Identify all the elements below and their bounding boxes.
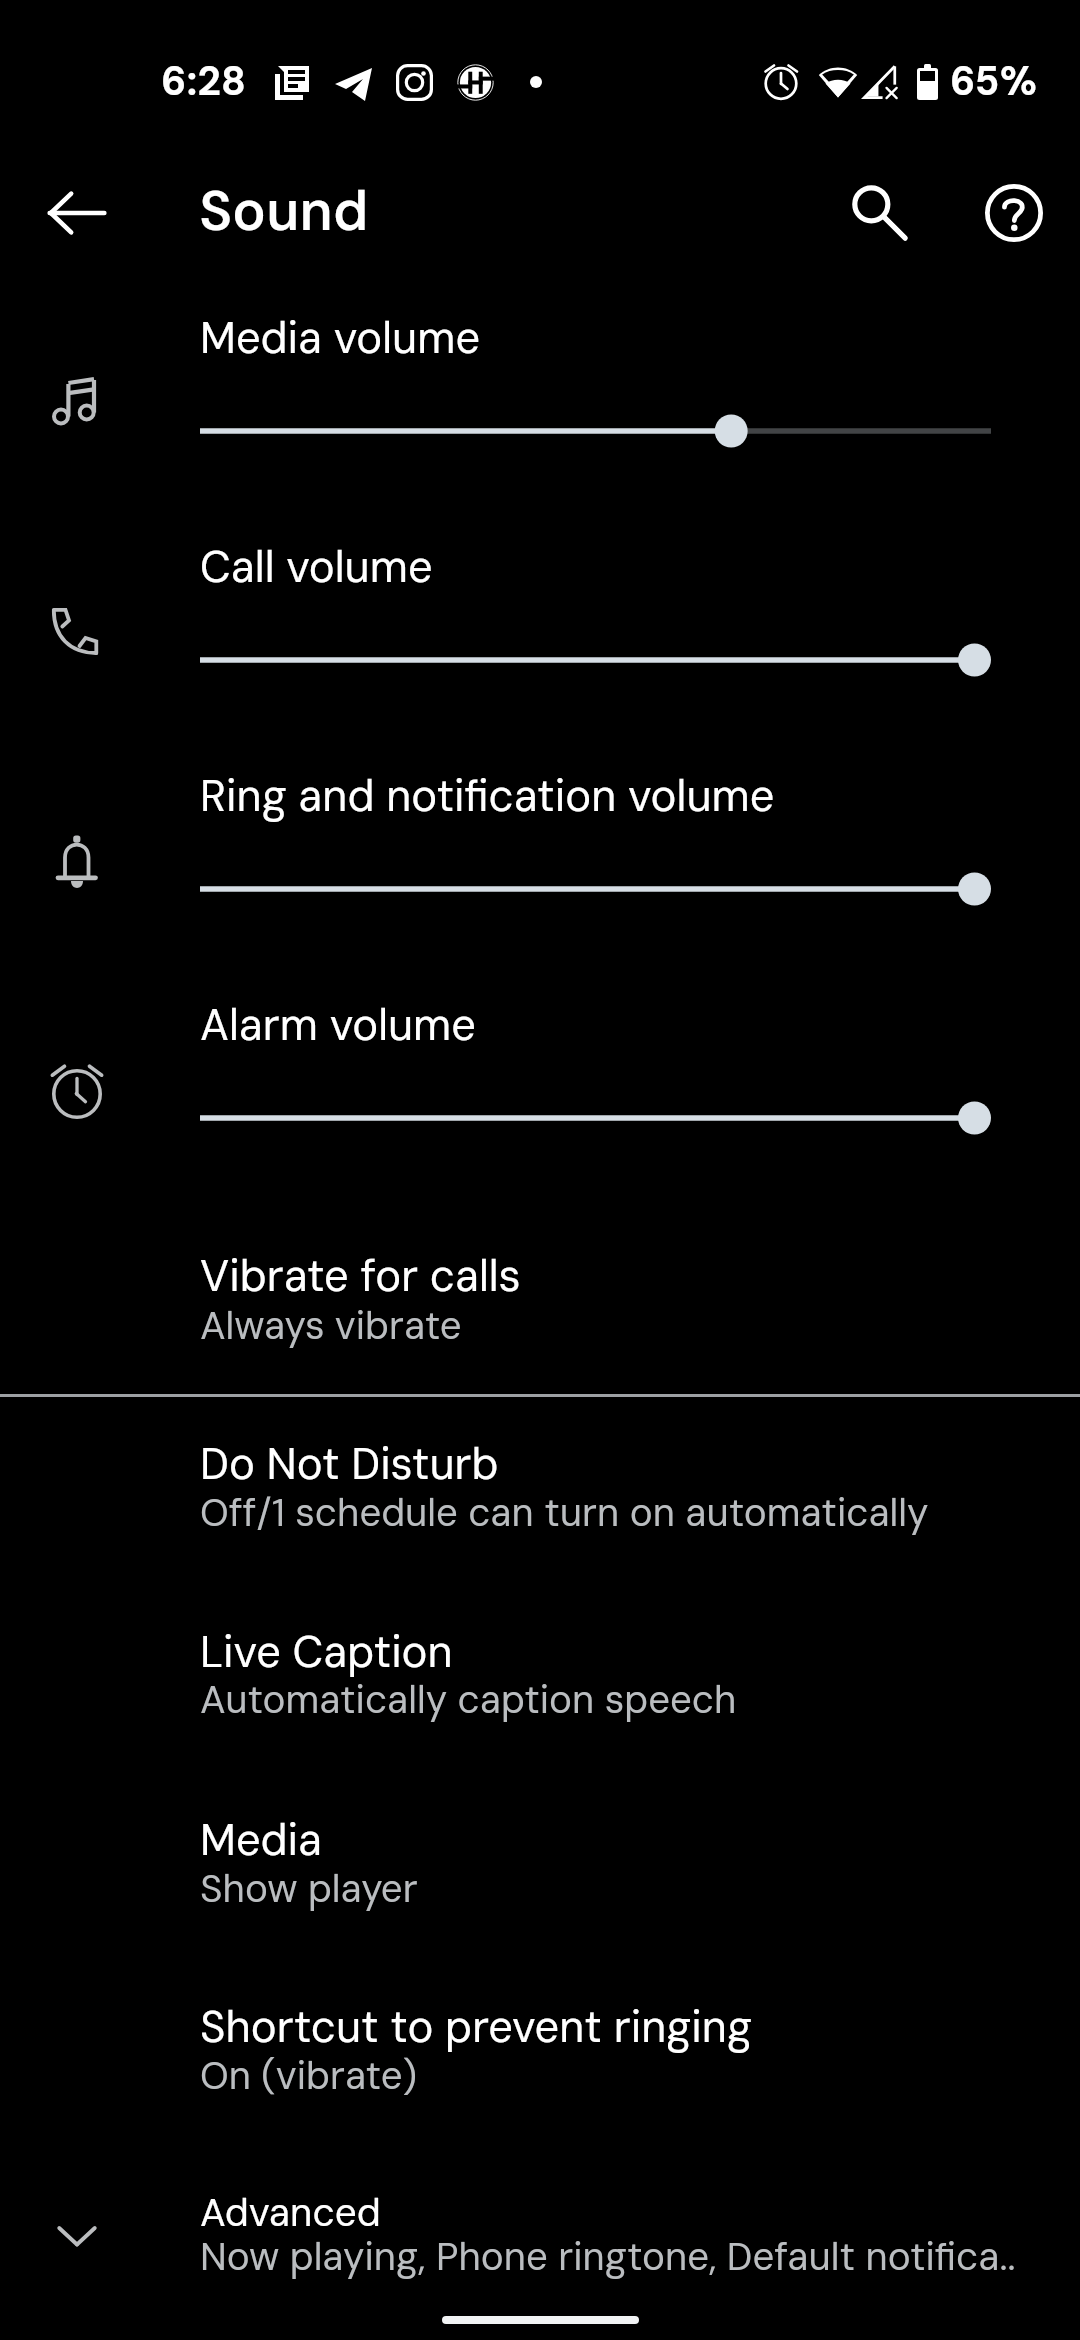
staticText: Media volume xyxy=(200,310,481,367)
staticText: Vibrate for calls xyxy=(200,1248,521,1305)
button[interactable] xyxy=(0,285,1080,465)
staticText: On (vibrate) xyxy=(200,2051,417,2101)
button[interactable] xyxy=(0,972,1080,1152)
button[interactable]: Help xyxy=(958,157,1070,269)
staticText: Do Not Disturb xyxy=(200,1436,499,1493)
staticText: 6:28 xyxy=(161,55,247,107)
button[interactable] xyxy=(0,1607,1080,1732)
staticText: Always vibrate xyxy=(200,1301,462,1351)
button[interactable] xyxy=(0,743,1080,923)
button[interactable] xyxy=(0,1795,1080,1920)
staticText: Advanced xyxy=(200,2188,381,2238)
staticText: Show player xyxy=(200,1864,418,1914)
button[interactable]: Back xyxy=(21,157,133,269)
staticText: Ring and notification volume xyxy=(200,768,775,825)
staticText: Now playing, Phone ringtone, Default not… xyxy=(200,2232,1016,2282)
button[interactable] xyxy=(0,1231,1080,1356)
staticText: Shortcut to prevent ringing xyxy=(200,1999,752,2056)
staticText: Media xyxy=(200,1812,322,1869)
staticText: 65% xyxy=(950,55,1038,107)
staticText: Automatically caption speech xyxy=(200,1675,737,1725)
button[interactable] xyxy=(0,1419,1080,1544)
button[interactable] xyxy=(0,2166,1080,2291)
staticText: Off/1 schedule can turn on automatically xyxy=(200,1488,929,1538)
staticText: Alarm volume xyxy=(200,997,476,1054)
staticText: Call volume xyxy=(200,539,433,596)
button[interactable] xyxy=(0,514,1080,694)
staticText: Sound xyxy=(199,175,369,247)
staticText: Live Caption xyxy=(200,1624,453,1681)
button[interactable]: Search xyxy=(824,157,936,269)
button[interactable] xyxy=(0,1982,1080,2107)
